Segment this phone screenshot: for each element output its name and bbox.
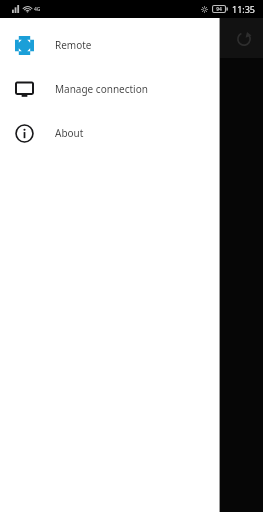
staticText: 94 xyxy=(216,6,222,13)
button[interactable]: Manage connection xyxy=(0,67,219,111)
button[interactable]: Remote xyxy=(0,23,219,67)
staticText: Remote xyxy=(55,38,92,52)
staticText: 4G xyxy=(34,6,41,13)
staticText: Manage connection xyxy=(55,82,148,96)
staticText: 11:35 xyxy=(232,3,256,15)
button[interactable]: About xyxy=(0,111,219,155)
staticText: About xyxy=(55,126,84,140)
button[interactable]: Refresh xyxy=(232,27,256,51)
